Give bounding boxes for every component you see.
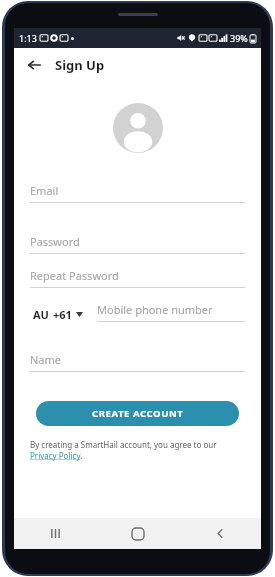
staticText: CREATE ACCOUNT: [92, 407, 184, 420]
staticText: Password: [30, 234, 80, 249]
button[interactable]: Email: [30, 183, 245, 203]
button[interactable]: CREATE ACCOUNT: [36, 401, 239, 426]
button[interactable]: Name: [30, 352, 245, 372]
staticText: Name: [30, 352, 62, 367]
button[interactable]: Privacy Policy.: [30, 450, 83, 461]
button[interactable]: Home: [97, 518, 179, 549]
staticText: 1:13: [19, 32, 37, 44]
button[interactable]: Recents: [14, 518, 97, 549]
staticText: 39%: [230, 32, 248, 44]
staticText: +61: [53, 307, 72, 322]
button[interactable]: Back: [21, 52, 47, 78]
staticText: AU: [33, 307, 49, 322]
button[interactable]: Password: [30, 234, 245, 254]
button[interactable]: Back: [179, 518, 261, 549]
button[interactable]: Repeat Password: [30, 268, 245, 288]
staticText: Sign Up: [55, 56, 105, 74]
button[interactable]: AU: [33, 307, 83, 322]
staticText: Repeat Password: [30, 268, 119, 283]
staticText: Email: [30, 183, 59, 198]
button[interactable]: Mobile phone number: [97, 302, 245, 322]
staticText: Privacy Policy.: [30, 450, 83, 461]
staticText: By creating a SmartHail account, you agr…: [30, 439, 217, 450]
staticText: Mobile phone number: [97, 302, 213, 317]
